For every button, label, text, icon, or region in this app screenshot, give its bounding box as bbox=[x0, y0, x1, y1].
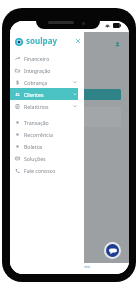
button[interactable]: Close menu bbox=[73, 36, 82, 45]
staticText: soulpay © 2021 - todos os direitos bbox=[49, 265, 91, 269]
staticText: Soluções bbox=[24, 155, 46, 162]
button[interactable]: Recorrência bbox=[10, 128, 78, 140]
staticText: Transação bbox=[24, 119, 49, 126]
staticText: Clientes bbox=[24, 91, 44, 98]
button[interactable]: Clientes bbox=[10, 88, 78, 100]
staticText: Fale conosco bbox=[24, 167, 56, 174]
button[interactable]: Integração bbox=[10, 64, 78, 76]
button[interactable]: Cobrança bbox=[10, 76, 78, 88]
button[interactable]: Fale conosco bbox=[10, 164, 78, 176]
staticText: Relatórios bbox=[24, 103, 49, 110]
staticText: NOME bbox=[74, 112, 85, 117]
staticText: soulpay bbox=[26, 35, 58, 46]
staticText: Boletos bbox=[24, 143, 43, 150]
staticText: Integração bbox=[24, 67, 51, 74]
button[interactable]: Chat bbox=[106, 244, 119, 257]
button[interactable]: Soluções bbox=[10, 152, 78, 164]
staticText: Cobrança bbox=[24, 79, 48, 86]
button[interactable] bbox=[53, 89, 121, 100]
button[interactable]: Account bbox=[115, 42, 120, 47]
button[interactable]: Transação bbox=[10, 116, 78, 128]
staticText: Financeiro bbox=[24, 55, 50, 62]
button[interactable]: Relatórios bbox=[10, 100, 78, 112]
button[interactable]: Boletos bbox=[10, 140, 78, 152]
button[interactable]: Financeiro bbox=[10, 52, 78, 64]
staticText: Recorrência bbox=[24, 131, 53, 138]
